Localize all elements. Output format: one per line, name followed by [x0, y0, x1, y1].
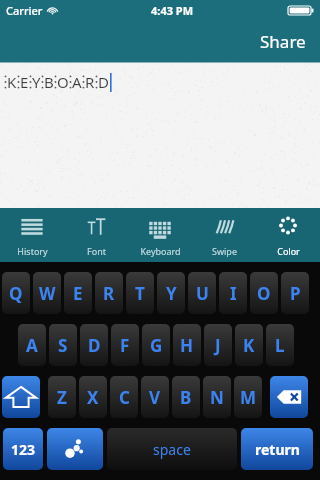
staticText: R: [85, 72, 95, 92]
staticText: F: [120, 334, 130, 357]
button[interactable]: Share: [260, 30, 306, 53]
staticText: Font: [87, 245, 106, 257]
button[interactable]: 123: [3, 428, 43, 470]
staticText: Y: [166, 282, 177, 305]
button[interactable]: X: [79, 376, 107, 418]
staticText: H: [180, 334, 194, 357]
button[interactable]: space: [107, 428, 237, 470]
button[interactable]: Emoji: [47, 428, 103, 470]
staticText: C: [119, 386, 130, 409]
staticText: 4:43 PM: [151, 3, 194, 18]
button[interactable]: History: [0, 208, 64, 262]
staticText: Q: [9, 282, 23, 305]
staticText: V: [149, 386, 161, 409]
staticText: E: [20, 72, 29, 92]
button[interactable]: E: [64, 272, 92, 314]
staticText: I: [230, 282, 237, 305]
staticText: B: [180, 386, 192, 409]
button[interactable]: C: [110, 376, 138, 418]
button[interactable]: T: [126, 272, 154, 314]
staticText: Swipe: [212, 245, 237, 257]
button[interactable]: Font: [64, 208, 128, 262]
staticText: J: [215, 334, 221, 357]
staticText: D: [88, 334, 101, 357]
button[interactable]: B: [172, 376, 200, 418]
button[interactable]: F: [111, 324, 139, 366]
button[interactable]: A: [18, 324, 46, 366]
button[interactable]: P: [281, 272, 309, 314]
button[interactable]: N: [203, 376, 231, 418]
staticText: E: [73, 282, 83, 305]
staticText: D: [98, 72, 109, 92]
button[interactable]: Z: [48, 376, 76, 418]
staticText: Y: [32, 72, 41, 92]
button[interactable]: D: [80, 324, 108, 366]
button[interactable]: V: [141, 376, 169, 418]
staticText: return: [255, 440, 300, 459]
button[interactable]: Keyboard: [128, 208, 192, 262]
staticText: A: [72, 72, 82, 92]
button[interactable]: U: [188, 272, 216, 314]
staticText: R: [103, 282, 115, 305]
staticText: W: [39, 282, 56, 305]
staticText: L: [275, 334, 285, 357]
staticText: T: [135, 282, 145, 305]
button[interactable]: Swipe: [192, 208, 256, 262]
staticText: A: [26, 334, 38, 357]
button[interactable]: R: [95, 272, 123, 314]
button[interactable]: I: [219, 272, 247, 314]
staticText: M: [240, 386, 257, 409]
button[interactable]: Q: [2, 272, 30, 314]
button[interactable]: S: [49, 324, 77, 366]
button[interactable]: K: [235, 324, 263, 366]
button[interactable]: return: [241, 428, 313, 470]
button[interactable]: H: [173, 324, 201, 366]
button[interactable]: M: [234, 376, 262, 418]
staticText: Share: [260, 30, 306, 53]
button[interactable]: Color: [256, 208, 320, 262]
staticText: O: [57, 72, 69, 92]
button[interactable]: Backspace: [270, 376, 308, 418]
staticText: Z: [57, 386, 67, 409]
button[interactable]: G: [142, 324, 170, 366]
button[interactable]: O: [250, 272, 278, 314]
staticText: Carrier: [6, 3, 43, 18]
staticText: N: [210, 386, 224, 409]
staticText: S: [58, 334, 68, 357]
staticText: 123: [11, 440, 36, 459]
staticText: Color: [277, 245, 300, 257]
staticText: X: [87, 386, 99, 409]
staticText: K: [243, 334, 255, 357]
button[interactable]: Shift: [2, 376, 40, 418]
staticText: U: [196, 282, 209, 305]
staticText: K: [7, 72, 17, 92]
staticText: Keyboard: [140, 245, 181, 257]
button[interactable]: W: [33, 272, 61, 314]
button[interactable]: Y: [157, 272, 185, 314]
staticText: G: [150, 334, 163, 357]
staticText: B: [44, 72, 54, 92]
staticText: History: [17, 245, 48, 257]
button[interactable]: L: [266, 324, 294, 366]
button[interactable]: J: [204, 324, 232, 366]
staticText: space: [153, 440, 191, 459]
staticText: P: [290, 282, 301, 305]
staticText: O: [257, 282, 271, 305]
